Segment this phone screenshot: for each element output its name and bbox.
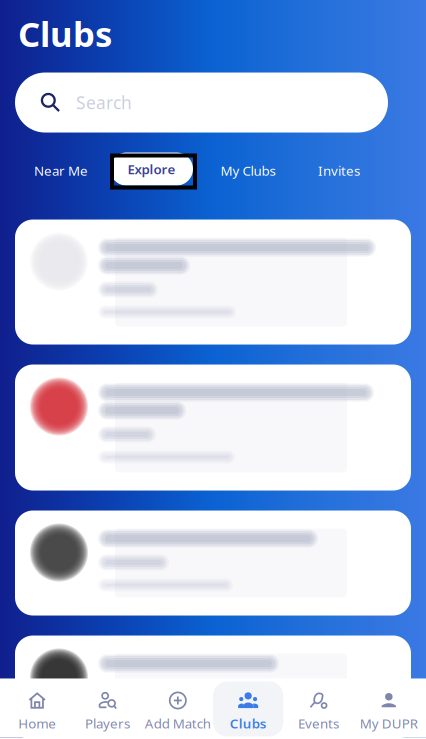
button[interactable]: Near Me [15,152,107,188]
staticText: Explore [127,160,175,178]
button[interactable] [15,219,411,344]
button[interactable]: My DUPR [354,681,424,736]
button[interactable] [15,364,411,490]
staticText: Near Me [34,162,88,179]
button[interactable] [15,635,411,739]
staticText: My Clubs [220,162,275,179]
button[interactable]: Clubs [213,681,283,736]
button[interactable]: Explore [110,152,193,188]
button[interactable]: Add Match [143,681,213,736]
button[interactable]: Players [72,681,143,736]
staticText: Clubs [18,10,112,56]
button[interactable]: Home [2,681,72,736]
staticText: Players [85,714,130,732]
button[interactable]: Invites [303,152,375,188]
staticText: Search [76,91,132,114]
staticText: Clubs [230,714,267,732]
staticText: My DUPR [360,714,418,732]
staticText: Add Match [145,714,211,732]
button[interactable] [15,510,411,615]
button[interactable]: Events [283,681,354,736]
staticText: Home [18,714,56,732]
staticText: Invites [318,162,360,179]
button[interactable]: My Clubs [196,152,300,188]
staticText: Events [298,714,339,732]
